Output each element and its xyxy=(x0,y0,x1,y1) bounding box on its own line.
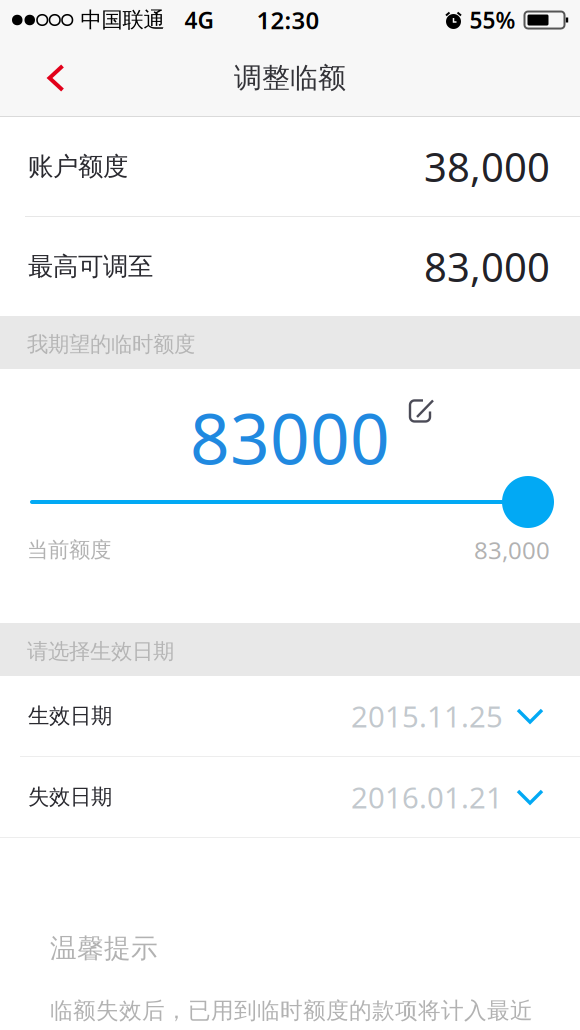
staticText: 温馨提示 xyxy=(50,932,158,965)
staticText: 4G xyxy=(184,5,213,35)
staticText: 83,000 xyxy=(474,534,550,566)
staticText: 生效日期 xyxy=(28,703,112,729)
staticText: 83,000 xyxy=(424,240,550,293)
staticText: 账户额度 xyxy=(28,151,128,182)
staticText: 2015.11.25 xyxy=(351,696,503,735)
button[interactable]: 生效日期 xyxy=(0,676,580,756)
staticText: 临额失效后，已用到临时额度的款项将计入最近 xyxy=(50,997,533,1025)
button[interactable]: 失效日期 xyxy=(0,757,580,837)
staticText: 12:30 xyxy=(256,4,319,36)
button[interactable]: 编辑额度 xyxy=(407,381,580,424)
staticText: 调整临额 xyxy=(234,61,346,95)
staticText: 38,000 xyxy=(424,140,550,193)
staticText: 2016.01.21 xyxy=(351,777,503,816)
staticText: 当前额度 xyxy=(27,537,111,563)
staticText: 请选择生效日期 xyxy=(27,638,174,665)
staticText: 83000 xyxy=(190,391,390,484)
staticText: 最高可调至 xyxy=(28,251,153,282)
staticText: 我期望的临时额度 xyxy=(27,331,195,358)
staticText: 中国联通 xyxy=(80,7,164,33)
staticText: 失效日期 xyxy=(28,784,112,810)
button[interactable]: 返回 xyxy=(27,47,85,109)
staticText: 55% xyxy=(469,5,515,35)
